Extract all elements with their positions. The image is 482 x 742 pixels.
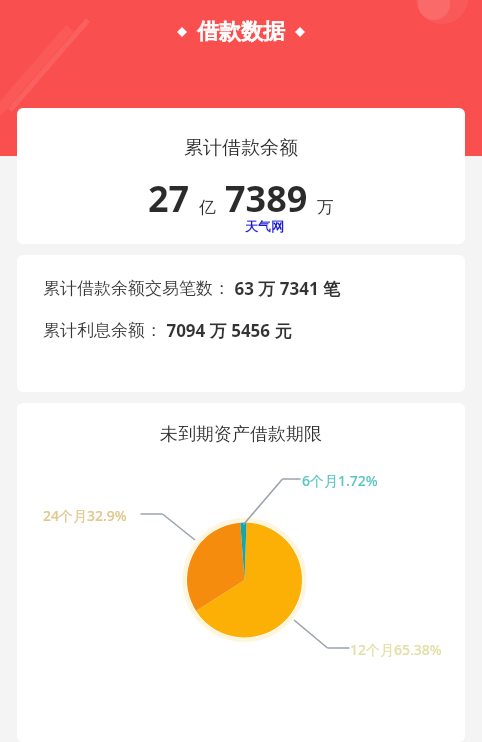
staticText: 27	[148, 174, 190, 223]
staticText: 24个月32.9%	[43, 506, 127, 525]
other: 未到期资产借款期限饼图	[17, 403, 465, 742]
staticText: 12个月65.38%	[350, 640, 442, 659]
staticText: 6个月1.72%	[302, 471, 378, 490]
staticText: 万	[317, 197, 334, 218]
button[interactable]: 累计借款余额交易笔数：	[17, 255, 465, 392]
staticText: 累计借款余额交易笔数：	[43, 278, 230, 299]
staticText: 天气网	[245, 218, 284, 234]
staticText: 累计利息余额：	[43, 320, 162, 341]
staticText: 未到期资产借款期限	[160, 423, 322, 446]
button[interactable]: 累计借款余额	[17, 108, 465, 244]
staticText: 7389	[225, 174, 308, 223]
button[interactable]: 未到期资产借款期限	[17, 403, 465, 742]
staticText: 63 万 7341 笔	[230, 277, 341, 300]
staticText: 累计借款余额	[184, 136, 298, 160]
staticText: 亿	[199, 197, 216, 218]
staticText: 7094 万 5456 元	[162, 319, 292, 342]
staticText: 借款数据	[197, 18, 285, 46]
